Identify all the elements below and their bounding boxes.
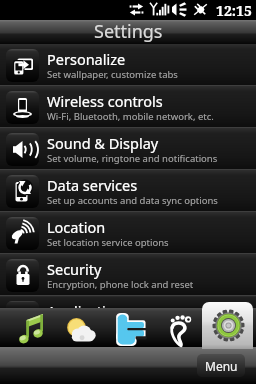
staticText: Set up accounts and data sync options <box>47 194 218 207</box>
staticText: Set location service options <box>47 236 169 249</box>
staticText: Application <box>47 301 124 314</box>
staticText: Set wallpaper, customize tabs <box>47 68 178 81</box>
staticText: Manage applications <box>47 320 140 333</box>
staticText: Security <box>47 259 102 279</box>
button[interactable]: Data services <box>0 170 256 212</box>
staticText: 12:15 <box>216 1 252 20</box>
button[interactable]: Settings <box>202 302 253 349</box>
button[interactable]: Application <box>0 296 256 309</box>
button[interactable]: Menu <box>197 354 245 377</box>
button[interactable]: twitter <box>108 310 152 349</box>
staticText: Location <box>47 217 106 237</box>
button[interactable]: Security <box>0 254 256 296</box>
button[interactable]: Location <box>0 212 256 254</box>
button[interactable]: weather <box>58 310 102 349</box>
staticText: Menu <box>205 358 238 374</box>
staticText: Wireless controls <box>47 91 163 111</box>
staticText: Personalize <box>47 49 126 69</box>
staticText: Wi-Fi, Bluetooth, mobile network, etc. <box>47 110 214 123</box>
button[interactable]: Sound & Display <box>0 128 256 170</box>
button[interactable]: Personalize <box>0 44 256 86</box>
staticText: Encryption, phone lock and reset <box>47 278 194 291</box>
button[interactable]: foot <box>158 310 202 349</box>
staticText: Sound & Display <box>47 133 159 153</box>
button[interactable]: music <box>9 309 53 348</box>
staticText: Set volume, ringtone and notifications <box>47 152 218 165</box>
staticText: Settings <box>94 19 163 43</box>
staticText: Data services <box>47 175 138 195</box>
button[interactable]: Wireless controls <box>0 86 256 128</box>
